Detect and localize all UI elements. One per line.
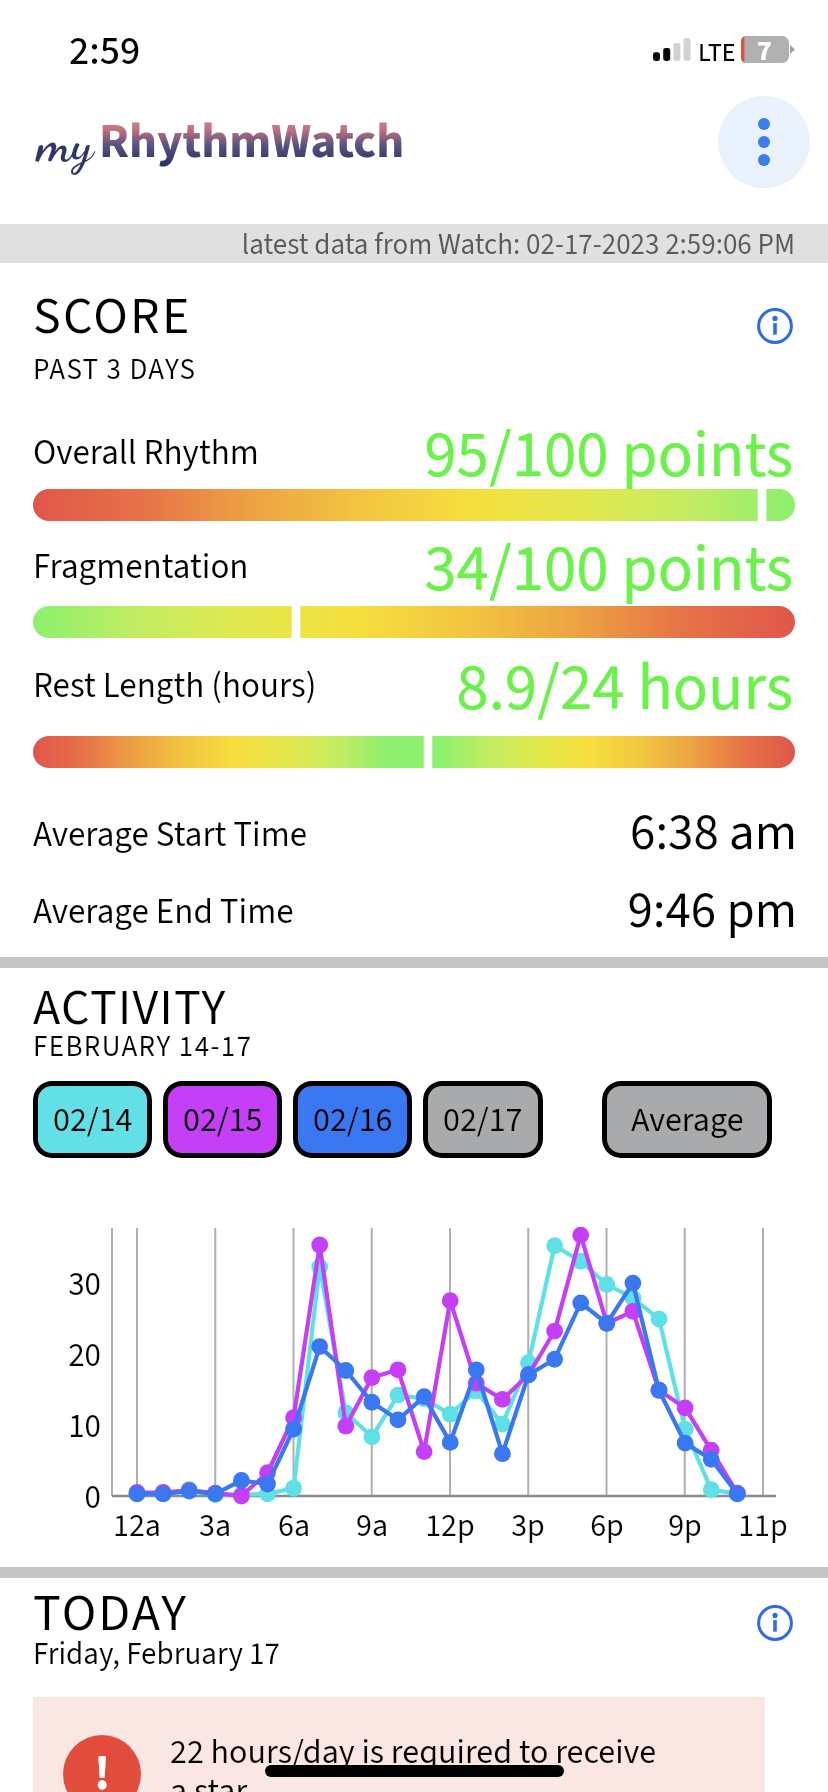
button[interactable]: 02/15 — [163, 1081, 282, 1158]
staticText: 9a — [282, 1503, 462, 1549]
staticText: 6:38 am — [0, 797, 797, 870]
staticText: Average Start Time — [33, 810, 308, 860]
staticText: 02/16 — [313, 1096, 393, 1144]
button[interactable]: 02/14 — [33, 1081, 152, 1158]
staticText: 3a — [125, 1503, 305, 1549]
staticText: 9p — [595, 1503, 775, 1549]
button[interactable]: Score information — [752, 303, 798, 349]
staticText: latest data from Watch: 02-17-2023 2:59:… — [0, 224, 795, 265]
staticText: 2:59 — [69, 23, 141, 80]
staticText: 02/17 — [443, 1096, 523, 1144]
button[interactable]: Today information — [752, 1600, 798, 1646]
button[interactable]: More options — [718, 96, 810, 188]
staticText: SCORE — [33, 280, 192, 354]
staticText: 7 — [757, 31, 772, 71]
staticText: Average — [631, 1096, 744, 1144]
staticText: 0 — [0, 1474, 101, 1521]
staticText: 9:46 pm — [0, 875, 797, 948]
staticText: 02/15 — [183, 1096, 263, 1144]
staticText: 30 — [0, 1261, 101, 1308]
staticText: 02/14 — [53, 1096, 133, 1144]
staticText: 6a — [204, 1503, 384, 1549]
staticText: 3p — [438, 1503, 618, 1549]
staticText: LTE — [698, 34, 736, 71]
staticText: Rest Length (hours) — [33, 661, 317, 711]
button[interactable]: Average — [602, 1081, 772, 1158]
staticText: ACTIVITY — [33, 973, 227, 1044]
staticText: 34/100 points — [0, 523, 793, 616]
staticText: 6p — [517, 1503, 697, 1549]
staticText: Fragmentation — [33, 542, 249, 592]
staticText: RhythmWatch — [99, 107, 405, 177]
staticText: 12a — [47, 1503, 227, 1549]
staticText: Friday, February 17 — [33, 1632, 280, 1676]
staticText: 10 — [0, 1403, 101, 1450]
staticText: 11p — [673, 1503, 828, 1549]
staticText: FEBRUARY 14-17 — [33, 1026, 253, 1067]
staticText: 20 — [0, 1332, 101, 1379]
staticText: ! — [94, 1740, 111, 1792]
button[interactable]: 02/17 — [423, 1081, 543, 1158]
staticText: 22 hours/day is required to receive a st… — [170, 1728, 662, 1792]
staticText: PAST 3 DAYS — [33, 349, 197, 390]
button[interactable]: 02/16 — [293, 1081, 412, 1158]
staticText: Overall Rhythm — [33, 428, 259, 478]
staticText: Average End Time — [33, 887, 294, 937]
staticText: my — [37, 111, 94, 175]
staticText: 12p — [360, 1503, 540, 1549]
staticText: 95/100 points — [0, 409, 793, 502]
staticText: TODAY — [33, 1577, 188, 1651]
staticText: 8.9/24 hours — [0, 642, 793, 735]
